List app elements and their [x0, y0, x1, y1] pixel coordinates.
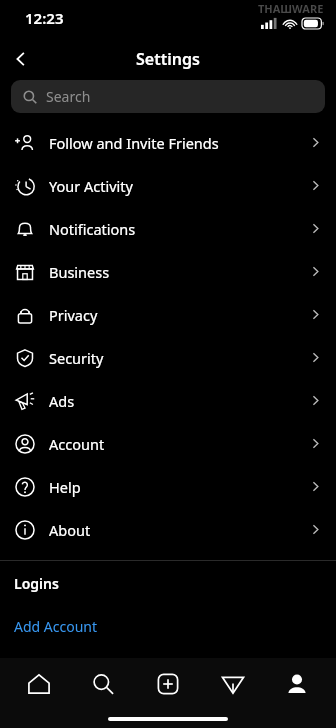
button[interactable]: Notifications — [0, 207, 336, 250]
staticText: Notifications — [49, 219, 136, 239]
button[interactable]: Follow and Invite Friends — [0, 121, 336, 164]
button[interactable]: Back — [0, 38, 42, 80]
button[interactable]: Add Account — [0, 615, 336, 638]
button[interactable]: Log Out Mystic — [0, 660, 336, 679]
staticText: Add Account — [14, 617, 98, 636]
staticText: THAШWARE — [258, 1, 324, 16]
staticText: Log Out Mystic — [14, 660, 113, 679]
button[interactable]: Ads — [0, 379, 336, 422]
button[interactable]: Reels — [207, 658, 259, 710]
button[interactable]: About — [0, 508, 336, 551]
button[interactable]: Search — [11, 80, 325, 113]
button[interactable]: Business — [0, 250, 336, 293]
staticText: Security — [49, 348, 104, 368]
button[interactable]: Search — [77, 658, 129, 710]
staticText: Settings — [136, 48, 200, 70]
button[interactable]: Profile — [271, 658, 323, 710]
staticText: Help — [49, 477, 81, 497]
staticText: Logins — [14, 574, 59, 593]
staticText: About — [49, 520, 91, 540]
staticText: Account — [49, 434, 105, 454]
button[interactable]: Account — [0, 422, 336, 465]
button[interactable]: Home — [13, 658, 65, 710]
staticText: Your Activity — [49, 176, 133, 196]
staticText: Follow and Invite Friends — [49, 133, 219, 153]
button[interactable]: Help — [0, 465, 336, 508]
button[interactable]: Your Activity — [0, 164, 336, 207]
staticText: Ads — [49, 391, 75, 411]
button[interactable]: Security — [0, 336, 336, 379]
staticText: Search — [46, 87, 91, 106]
staticText: 12:23 — [25, 8, 64, 28]
staticText: Business — [49, 262, 110, 282]
button[interactable]: Privacy — [0, 293, 336, 336]
button[interactable]: Create — [142, 658, 194, 710]
staticText: Privacy — [49, 305, 98, 325]
